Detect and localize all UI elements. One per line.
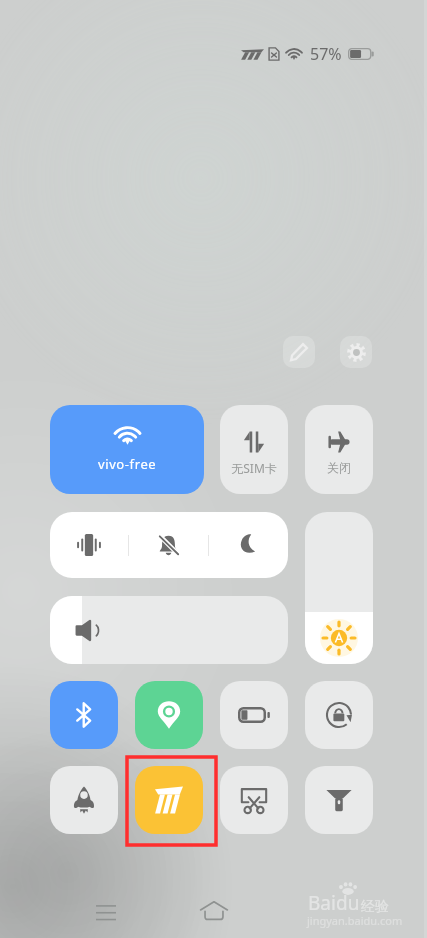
button[interactable]: Super card [135, 766, 203, 834]
staticText: du [336, 890, 360, 916]
button[interactable]: Vibrate [50, 512, 128, 578]
staticText: 57% [310, 43, 342, 65]
button[interactable]: Mute [129, 512, 208, 578]
button[interactable]: Flashlight [305, 766, 373, 834]
button[interactable]: Game mode [50, 766, 118, 834]
button[interactable]: Screenshot [220, 766, 288, 834]
staticText: 无SIM卡 [231, 460, 277, 476]
staticText: jingyan.baidu.com [307, 913, 403, 928]
staticText: Bai [308, 890, 336, 916]
button[interactable]: Volume [50, 596, 288, 664]
button[interactable]: Brightness [305, 512, 373, 664]
staticText: 关闭 [327, 460, 351, 475]
button[interactable]: 无SIM卡 [220, 405, 288, 494]
button[interactable]: Rotation lock [305, 681, 373, 749]
button[interactable]: vivo-free [50, 405, 204, 494]
button[interactable]: Do not disturb [209, 512, 288, 578]
button[interactable]: Edit [283, 336, 315, 368]
button[interactable]: Recents [86, 890, 126, 934]
button[interactable]: 关闭 [305, 405, 373, 494]
button[interactable]: Bluetooth [50, 681, 118, 749]
staticText: 经验 [361, 898, 389, 916]
button[interactable]: Battery saver [220, 681, 288, 749]
button[interactable]: Home [192, 888, 236, 932]
button[interactable]: Location [135, 681, 203, 749]
button[interactable]: Settings [340, 336, 372, 368]
staticText: vivo-free [98, 455, 157, 473]
